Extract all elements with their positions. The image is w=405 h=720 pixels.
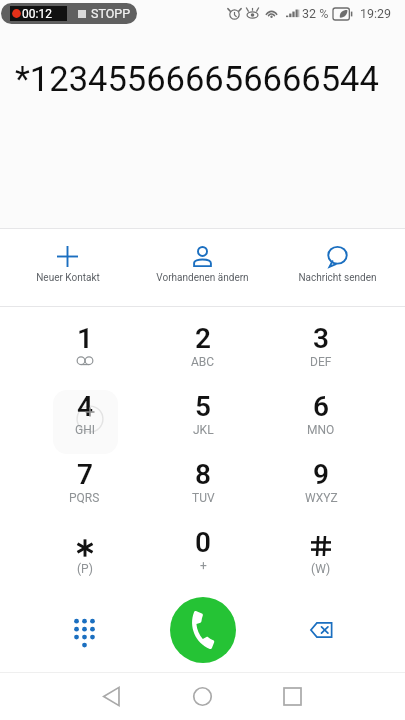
staticText: DEF <box>310 355 332 369</box>
staticText: Vorhandenen ändern <box>156 272 249 284</box>
staticText: JKL <box>193 423 214 437</box>
button[interactable]: 0 <box>144 519 262 587</box>
button[interactable]: Call <box>170 597 236 663</box>
button[interactable]: 5 <box>144 383 262 451</box>
staticText: 00:12 <box>22 7 52 21</box>
staticText: 3 <box>313 322 329 355</box>
staticText: Nachricht senden <box>298 272 377 284</box>
staticText: (W) <box>311 562 331 576</box>
staticText: WXYZ <box>305 491 338 505</box>
button[interactable]: 6 <box>262 383 380 451</box>
staticText: 7 <box>77 458 93 491</box>
staticText: TUV <box>192 491 215 505</box>
staticText: 6 <box>313 390 329 423</box>
button[interactable]: Nachricht senden <box>270 228 405 307</box>
button[interactable]: Vorhandenen ändern <box>135 228 270 307</box>
staticText: 32 % <box>302 6 329 21</box>
staticText: + <box>200 559 207 573</box>
staticText: 4 <box>77 390 93 423</box>
button[interactable]: 2 <box>144 315 262 383</box>
staticText: GHI <box>75 423 95 437</box>
button[interactable]: Back <box>75 672 147 720</box>
staticText: PQRS <box>69 491 100 505</box>
staticText: 9 <box>313 458 329 491</box>
staticText: 19:29 <box>360 6 392 21</box>
button[interactable]: (W) <box>262 519 380 587</box>
staticText: 2 <box>195 322 211 355</box>
staticText: ABC <box>191 355 215 369</box>
button[interactable]: Home <box>166 672 238 720</box>
button[interactable]: 1 <box>25 315 144 383</box>
staticText: MNO <box>307 423 335 437</box>
staticText: 8 <box>195 458 211 491</box>
button[interactable]: (P) <box>25 519 144 587</box>
staticText: 5 <box>195 390 211 423</box>
staticText: 1 <box>77 322 93 355</box>
button[interactable]: 3 <box>262 315 380 383</box>
button[interactable]: Show dialpad <box>25 594 144 666</box>
button[interactable]: 8 <box>144 451 262 519</box>
button[interactable]: Neuer Kontakt <box>0 228 135 307</box>
staticText: Neuer Kontakt <box>36 272 100 284</box>
staticText: STOPP <box>91 6 131 21</box>
staticText: 0 <box>195 526 211 559</box>
button[interactable]: 4 <box>25 383 144 451</box>
staticText: *123455666656666544 <box>15 59 379 99</box>
button[interactable]: 9 <box>262 451 380 519</box>
button[interactable]: Recent apps <box>256 672 328 720</box>
button[interactable]: Delete <box>262 594 380 666</box>
button[interactable]: 7 <box>25 451 144 519</box>
staticText: (P) <box>77 562 93 576</box>
